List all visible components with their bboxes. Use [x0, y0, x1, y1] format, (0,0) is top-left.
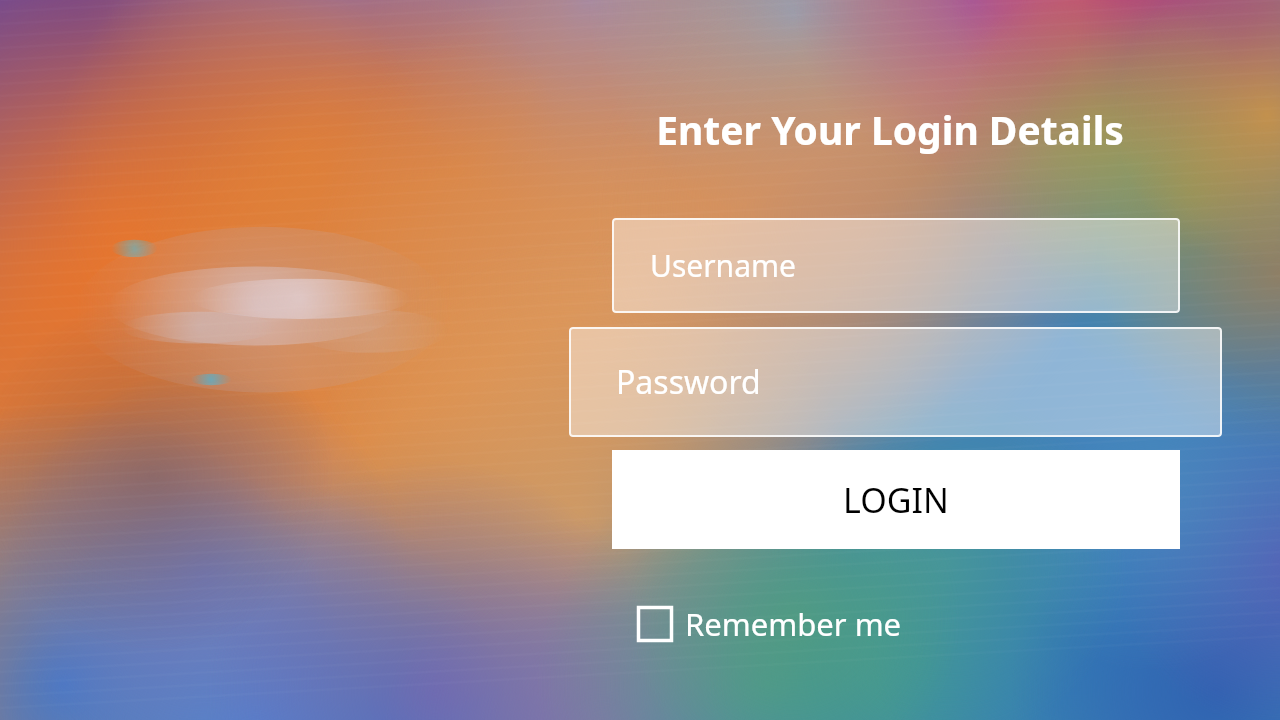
button[interactable]: Remember me checkbox [637, 600, 902, 648]
button[interactable]: LOGIN [612, 450, 1180, 549]
staticText: Remember me [685, 603, 902, 645]
other: Remember me checkbox [637, 606, 673, 642]
button[interactable]: Password [569, 327, 1222, 437]
staticText: Enter Your Login Details [560, 103, 1220, 156]
staticText: LOGIN [843, 477, 949, 523]
staticText: Username [650, 245, 796, 286]
button[interactable]: Username [612, 218, 1180, 313]
staticText: Password [616, 360, 761, 404]
